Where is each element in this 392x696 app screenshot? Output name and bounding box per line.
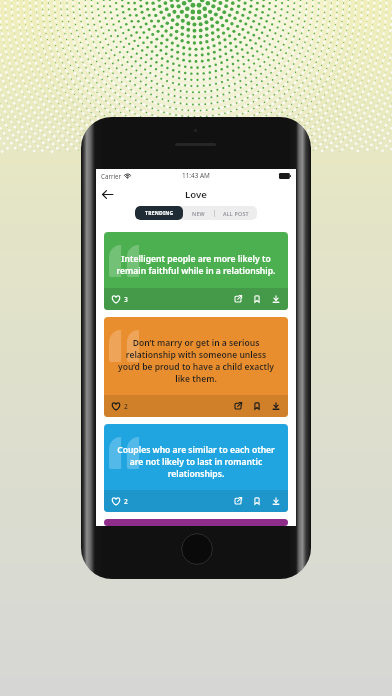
button[interactable]: Share — [233, 294, 243, 304]
staticText: TRENDING — [145, 210, 174, 217]
button[interactable]: NEW — [183, 206, 214, 220]
button[interactable]: 2 — [111, 402, 128, 411]
button[interactable]: Share — [233, 496, 243, 506]
button[interactable]: Intelligent people are more likely to re… — [104, 232, 288, 310]
staticText: 3 — [124, 295, 128, 304]
staticText: Carrier — [101, 172, 122, 180]
staticText: NEW — [192, 210, 205, 217]
button[interactable]: Bookmark — [252, 401, 262, 411]
button[interactable]: Share — [233, 401, 243, 411]
staticText: Don’t marry or get in a serious relation… — [114, 337, 278, 385]
button[interactable]: Download — [271, 294, 281, 304]
staticText: 11:43 AM — [182, 171, 210, 180]
staticText: ALL POST — [223, 210, 249, 217]
button[interactable]: Bookmark — [252, 496, 262, 506]
button[interactable]: Bookmark — [252, 294, 262, 304]
button[interactable]: Back — [101, 188, 114, 201]
button[interactable]: 3 — [111, 295, 128, 304]
staticText: Intelligent people are more likely to re… — [114, 253, 278, 277]
staticText: Couples who are similar to each other ar… — [114, 444, 278, 480]
button[interactable]: 2 — [111, 497, 128, 506]
button[interactable]: TRENDING — [135, 206, 183, 220]
staticText: 2 — [124, 402, 128, 411]
button[interactable]: Download — [271, 401, 281, 411]
staticText: Love — [185, 188, 207, 201]
button[interactable]: Don’t marry or get in a serious relation… — [104, 317, 288, 417]
staticText: 2 — [124, 497, 128, 506]
button[interactable]: ALL POST — [215, 206, 257, 220]
button[interactable]: Couples who are similar to each other ar… — [104, 424, 288, 512]
button[interactable]: Download — [271, 496, 281, 506]
